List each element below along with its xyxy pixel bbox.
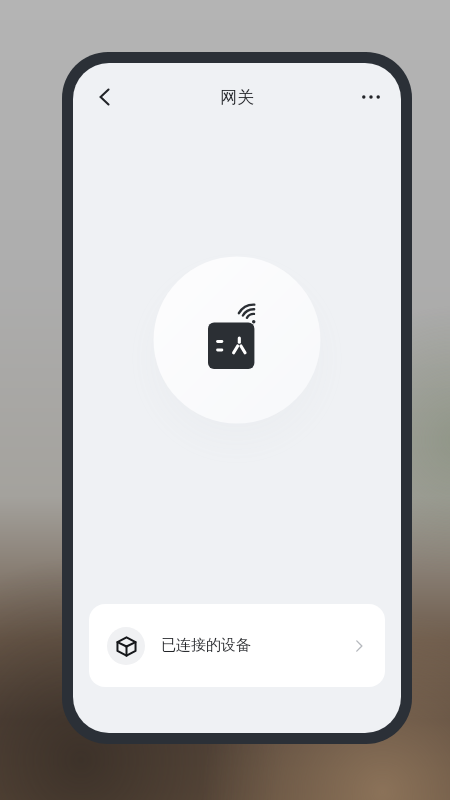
staticText: 网关 (220, 87, 254, 108)
button[interactable]: More options (347, 73, 395, 121)
staticText: 已连接的设备 (161, 636, 251, 655)
button[interactable]: 已连接的设备 (89, 604, 385, 687)
button[interactable]: Back (81, 73, 129, 121)
